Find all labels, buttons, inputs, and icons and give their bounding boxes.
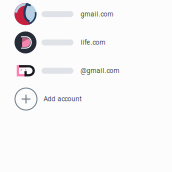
staticText: gmail.com [80,10,113,18]
button[interactable]: Add account [0,85,172,113]
button[interactable]: gmail.com [0,0,172,28]
staticText: life.com [80,38,105,46]
staticText: @gmail.com [80,67,119,75]
button[interactable]: life.com [0,28,172,57]
button[interactable]: @gmail.com [0,57,172,85]
staticText: Add account [43,95,81,103]
